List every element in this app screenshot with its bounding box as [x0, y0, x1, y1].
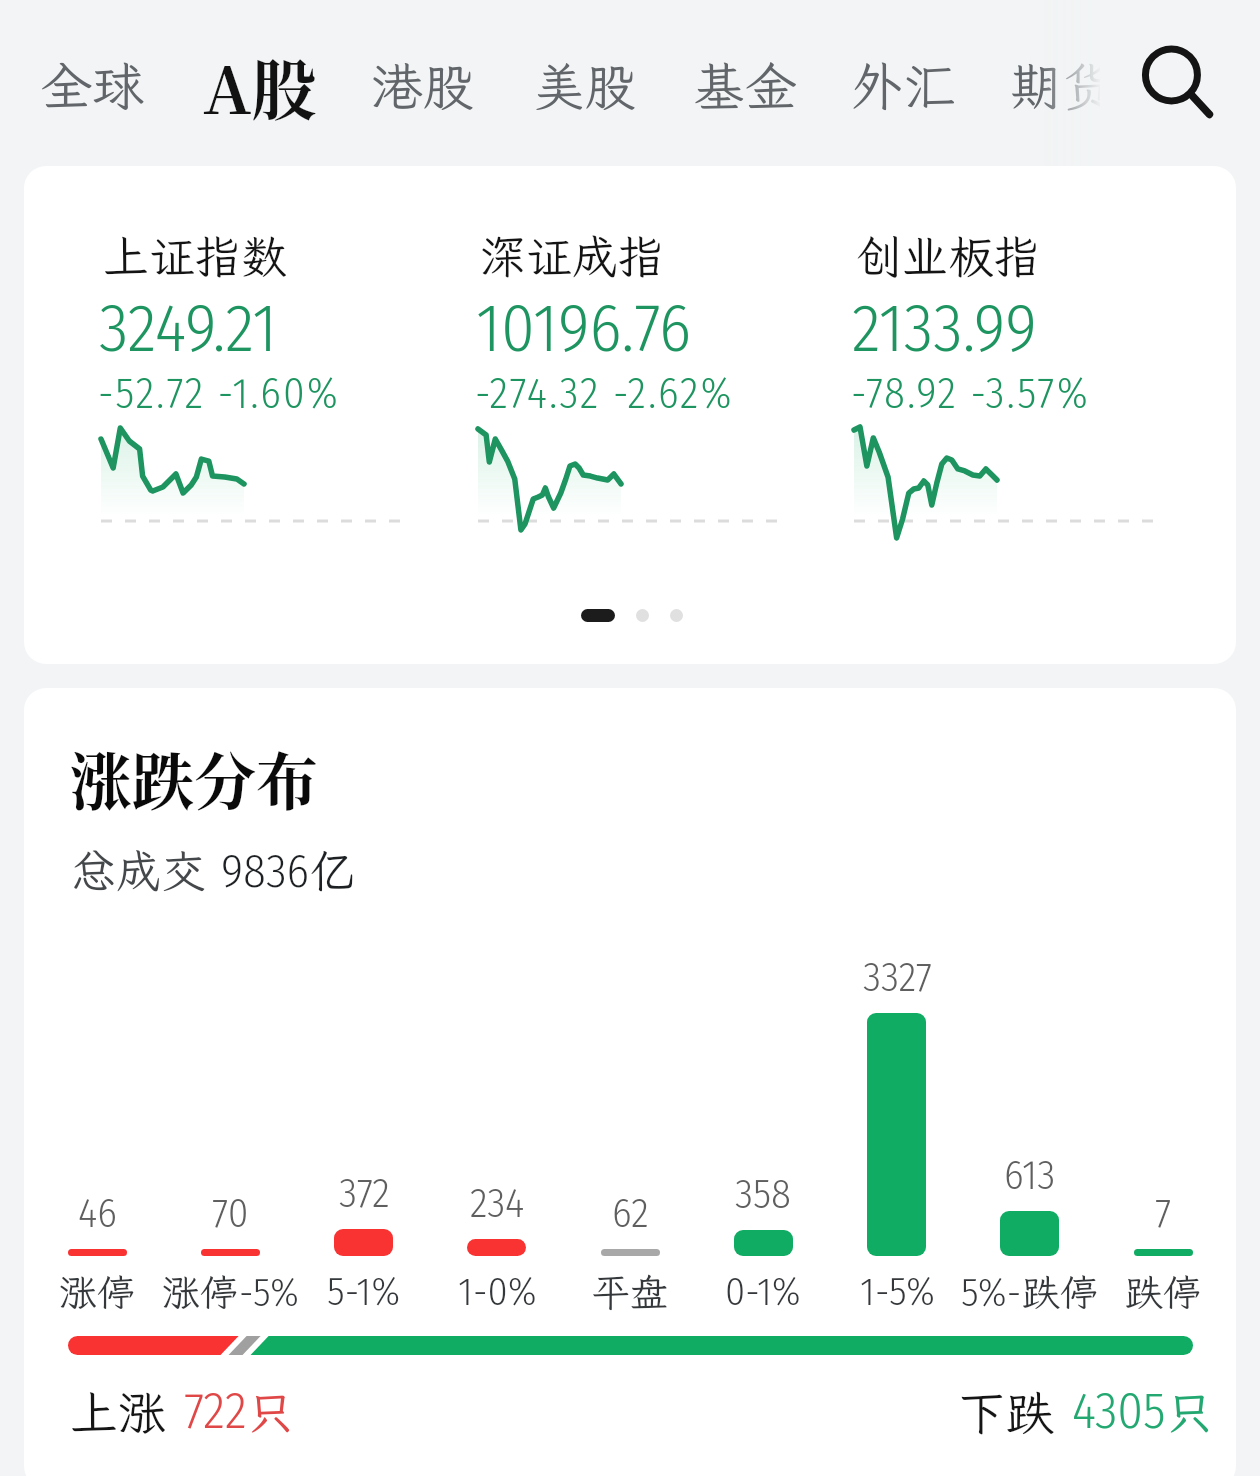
button[interactable]: 全球	[26, 32, 158, 138]
staticText: 5-1%	[327, 1268, 401, 1316]
staticText: 3249.21	[99, 288, 278, 368]
staticText: 涨停	[59, 1267, 136, 1317]
button[interactable]: 5-1%	[269, 1264, 459, 1320]
button[interactable]: 创业板指	[845, 210, 1185, 540]
staticText: A股	[203, 39, 317, 132]
button[interactable]: 深证成指	[469, 210, 809, 540]
staticText: 外汇	[851, 51, 956, 119]
button[interactable]: 涨停	[24, 1264, 192, 1320]
staticText: -78.92 -3.57%	[851, 368, 1090, 420]
staticText: -5%	[239, 1269, 299, 1317]
staticText: 7	[1155, 1189, 1172, 1238]
button[interactable]: 1-5%	[802, 1264, 992, 1320]
staticText: 涨跌分布	[70, 734, 319, 823]
button[interactable]: 上证指数	[92, 210, 432, 540]
staticText: 9836	[221, 843, 310, 899]
staticText: -52.72 -1.60%	[98, 368, 340, 420]
staticText: 3327	[863, 953, 932, 1002]
button[interactable]: 1-0%	[402, 1264, 592, 1320]
staticText: 0-1%	[725, 1268, 801, 1316]
button[interactable]: 港股	[357, 32, 489, 138]
staticText: 基金	[693, 51, 798, 119]
staticText: 2133.99	[852, 288, 1037, 368]
staticText: 期货	[1010, 51, 1115, 119]
staticText: 港股	[371, 51, 476, 119]
staticText: 跌停	[1125, 1267, 1202, 1317]
staticText: 722	[184, 1380, 247, 1441]
staticText: 62	[612, 1189, 649, 1238]
staticText: 4305	[1072, 1380, 1166, 1441]
staticText: 总成交	[71, 841, 207, 900]
staticText: 全球	[40, 51, 145, 119]
button[interactable]: 平盘	[535, 1264, 725, 1320]
staticText: 上证指数	[103, 226, 287, 287]
staticText: 70	[212, 1189, 249, 1238]
button[interactable]: 涨停	[135, 1264, 325, 1320]
button[interactable]: 美股	[519, 32, 651, 138]
staticText: 10196.76	[476, 288, 692, 368]
staticText: 只	[247, 1380, 296, 1443]
button[interactable]: 5%-	[935, 1264, 1125, 1320]
staticText: 46	[78, 1189, 117, 1238]
button[interactable]: 基金	[679, 32, 811, 138]
staticText: 上涨	[70, 1380, 167, 1443]
button[interactable]: Search	[1130, 38, 1222, 130]
button[interactable]: A股	[182, 32, 338, 138]
button[interactable]: 0-1%	[668, 1264, 858, 1320]
button[interactable]: 期货	[996, 32, 1128, 138]
staticText: 613	[1004, 1151, 1056, 1200]
staticText: 创业板指	[856, 226, 1040, 287]
staticText: 5%-	[961, 1269, 1022, 1317]
staticText: 1-5%	[860, 1268, 935, 1316]
button[interactable]: 外汇	[837, 32, 969, 138]
staticText: 涨停	[162, 1267, 239, 1317]
staticText: 平盘	[592, 1267, 669, 1317]
staticText: 372	[339, 1169, 390, 1218]
staticText: 深证成指	[480, 226, 664, 287]
button[interactable]: 跌停	[1068, 1264, 1236, 1320]
staticText: 1-0%	[458, 1268, 537, 1316]
staticText: 358	[735, 1170, 792, 1219]
staticText: 跌停	[1022, 1267, 1099, 1317]
button[interactable]: 上涨	[70, 1380, 296, 1443]
staticText: -274.32 -2.62%	[475, 368, 734, 420]
staticText: 亿	[310, 841, 356, 900]
staticText: 美股	[533, 51, 638, 119]
staticText: 下跌	[958, 1380, 1055, 1443]
staticText: 234	[470, 1179, 525, 1228]
button[interactable]: 下跌	[958, 1380, 1215, 1443]
staticText: 只	[1166, 1380, 1215, 1443]
